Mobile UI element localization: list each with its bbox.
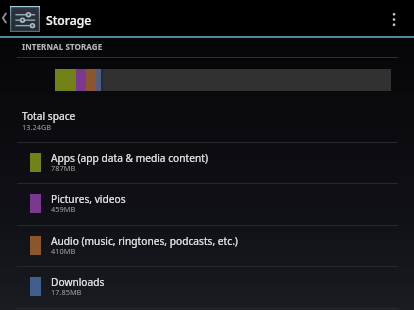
button[interactable]: More options bbox=[380, 0, 406, 36]
staticText: Apps (app data & media content) bbox=[51, 151, 208, 165]
button[interactable]: Navigate up bbox=[0, 0, 40, 36]
staticText: 410MB bbox=[51, 246, 76, 256]
button[interactable]: Pictures, videos bbox=[0, 184, 414, 225]
staticText: Audio (music, ringtones, podcasts, etc.) bbox=[51, 234, 238, 248]
staticText: 13.24GB bbox=[22, 122, 52, 132]
staticText: Storage bbox=[46, 12, 92, 29]
button[interactable]: Downloads bbox=[0, 267, 414, 308]
staticText: Total space bbox=[22, 109, 76, 123]
staticText: INTERNAL STORAGE bbox=[22, 41, 103, 52]
button[interactable]: Apps (app data & media content) bbox=[0, 143, 414, 184]
staticText: 459MB bbox=[51, 204, 76, 214]
button[interactable]: Total space bbox=[0, 105, 414, 141]
staticText: 17.85MB bbox=[51, 287, 82, 297]
button[interactable]: Audio (music, ringtones, podcasts, etc.) bbox=[0, 226, 414, 267]
staticText: Pictures, videos bbox=[51, 192, 126, 206]
staticText: Downloads bbox=[51, 275, 105, 289]
staticText: 787MB bbox=[51, 163, 76, 173]
